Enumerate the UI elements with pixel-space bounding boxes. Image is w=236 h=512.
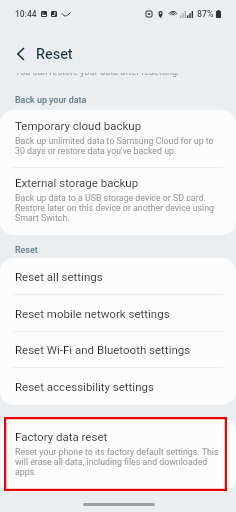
staticText: Back up your data [15, 95, 87, 105]
staticText: Reset [36, 46, 73, 63]
staticText: Reset Wi-Fi and Bluetooth settings [15, 343, 191, 356]
staticText: Reset accessibility settings [15, 380, 154, 393]
staticText: 87% [197, 9, 214, 19]
staticText: External storage backup [15, 176, 139, 189]
staticText: Factory data reset [15, 430, 108, 443]
button[interactable]: Reset Wi-Fi and Bluetooth settings [0, 331, 236, 368]
staticText: Reset mobile network settings [15, 307, 170, 320]
button[interactable]: Reset all settings [0, 258, 236, 295]
button[interactable]: Reset accessibility settings [0, 368, 236, 405]
staticText: Reset [15, 245, 38, 255]
staticText: 10:44 [15, 9, 37, 19]
button[interactable]: Reset mobile network settings [0, 295, 236, 332]
staticText: You can restore your data after resettin… [15, 73, 180, 78]
staticText: Reset your phone to its factory default … [15, 447, 222, 477]
staticText: Back up data to a USB storage device or … [15, 193, 222, 223]
button[interactable]: Navigate up [10, 43, 31, 64]
staticText: Back up unlimited data to Samsung Cloud … [15, 136, 222, 156]
staticText: Temporary cloud backup [15, 119, 142, 132]
staticText: Reset all settings [15, 270, 103, 283]
